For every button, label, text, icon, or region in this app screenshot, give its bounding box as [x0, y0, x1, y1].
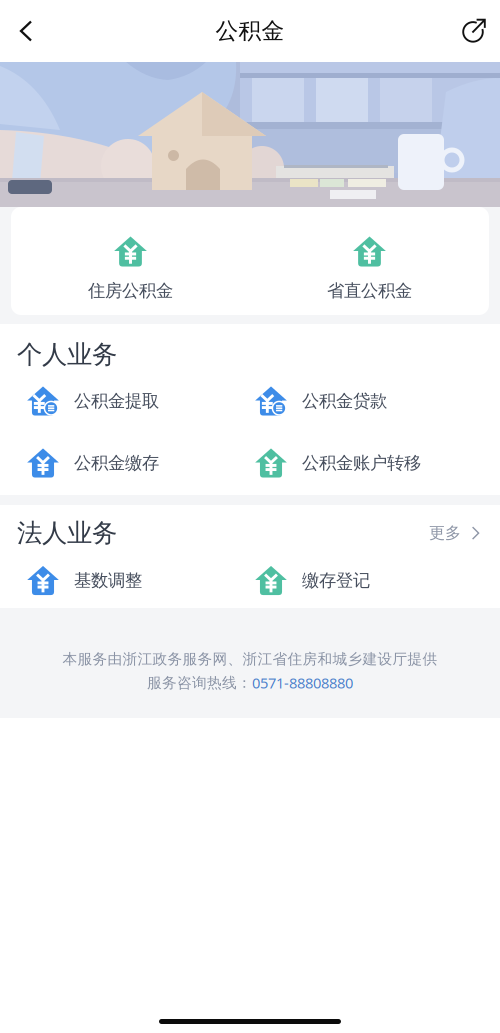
- button[interactable]: 公积金提取: [0, 370, 228, 432]
- staticText: 个人业务: [17, 339, 117, 370]
- staticText: 0571-88808880: [252, 673, 353, 692]
- staticText: 住房公积金: [88, 280, 173, 301]
- button[interactable]: 公积金缴存: [0, 432, 228, 494]
- staticText: 基数调整: [74, 570, 142, 591]
- staticText: 公积金缴存: [74, 452, 159, 474]
- button[interactable]: 省直公积金: [250, 207, 489, 315]
- button[interactable]: 公积金贷款: [228, 370, 456, 432]
- staticText: 法人业务: [17, 517, 117, 548]
- staticText: 公积金账户转移: [302, 452, 421, 474]
- staticText: 缴存登记: [302, 570, 370, 591]
- staticText: 服务咨询热线：: [147, 674, 252, 692]
- staticText: 更多: [429, 523, 461, 543]
- button[interactable]: 基数调整: [0, 553, 228, 608]
- staticText: 公积金贷款: [302, 390, 387, 412]
- button[interactable]: 更多: [429, 513, 480, 553]
- button[interactable]: 住房公积金: [11, 207, 250, 315]
- button[interactable]: Back: [0, 2, 52, 60]
- button[interactable]: 缴存登记: [228, 553, 456, 608]
- button[interactable]: 公积金账户转移: [228, 432, 456, 494]
- staticText: 公积金: [215, 17, 284, 45]
- staticText: 公积金提取: [74, 390, 159, 412]
- staticText: 省直公积金: [327, 280, 412, 301]
- staticText: 本服务由浙江政务服务网、浙江省住房和城乡建设厅提供: [62, 650, 437, 668]
- button[interactable]: Share: [448, 2, 500, 60]
